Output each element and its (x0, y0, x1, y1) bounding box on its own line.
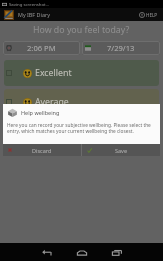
staticText: Help wellbeing (21, 109, 60, 116)
staticText: Saving screenshot... (9, 1, 50, 7)
staticText: Excellent (35, 67, 72, 79)
button[interactable]: Save (82, 144, 160, 156)
staticText: 7/29/13 (107, 43, 135, 53)
staticText: HELP (146, 12, 158, 18)
staticText: Save (115, 147, 128, 154)
staticText: How do you feel today? (33, 24, 130, 36)
button[interactable]: 7/29/13 (82, 41, 160, 55)
staticText: Discard (32, 147, 52, 154)
button[interactable]: Recent apps (105, 243, 129, 261)
button[interactable]: HELP (136, 8, 161, 21)
staticText: Here you can record your subjective well… (7, 122, 156, 134)
staticText: My IBF Diary (18, 11, 50, 18)
button[interactable]: 2:06 PM (3, 41, 80, 55)
button[interactable]: Home (70, 243, 94, 261)
button[interactable]: Average (4, 89, 159, 115)
button[interactable]: Excellent (4, 60, 159, 86)
staticText: Average (35, 96, 69, 108)
staticText: 2:06 PM (27, 43, 56, 53)
button[interactable]: Discard (3, 144, 81, 156)
button[interactable]: Back (35, 243, 59, 261)
